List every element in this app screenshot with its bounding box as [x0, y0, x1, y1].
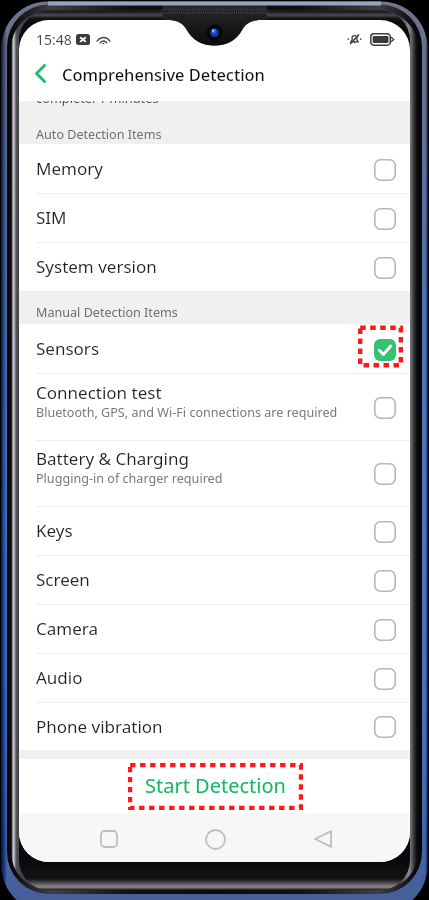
- staticText: Start Detection: [145, 772, 286, 799]
- staticText: Audio: [36, 666, 83, 689]
- button[interactable]: Toggle item: [374, 159, 396, 181]
- staticText: Keys: [36, 519, 73, 542]
- button[interactable]: Screen: [19, 555, 410, 604]
- staticText: Battery & Charging: [36, 447, 189, 470]
- staticText: Comprehensive Detection: [62, 63, 265, 85]
- button[interactable]: Memory: [19, 144, 410, 193]
- button[interactable]: Toggle item: [374, 716, 396, 738]
- button[interactable]: System version: [19, 242, 410, 291]
- button[interactable]: Back: [301, 817, 345, 861]
- button[interactable]: Connection test: [19, 373, 410, 440]
- button[interactable]: Phone vibration: [19, 702, 410, 750]
- staticText: Sensors: [36, 337, 100, 360]
- button[interactable]: Recent apps: [87, 817, 131, 861]
- button[interactable]: Audio: [19, 653, 410, 702]
- button[interactable]: Toggle item: [374, 619, 396, 641]
- staticText: Bluetooth, GPS, and Wi-Fi connections ar…: [36, 404, 338, 421]
- button[interactable]: Toggle item: [374, 463, 396, 485]
- button[interactable]: Camera: [19, 604, 410, 653]
- staticText: Camera: [36, 617, 98, 640]
- button[interactable]: Keys: [19, 506, 410, 555]
- staticText: Auto Detection Items: [36, 126, 162, 143]
- button[interactable]: Toggle item: [374, 397, 396, 419]
- staticText: 15:48: [36, 30, 72, 49]
- button[interactable]: Toggle item: [374, 208, 396, 230]
- button[interactable]: Toggle item: [374, 257, 396, 279]
- staticText: SIM: [36, 206, 67, 229]
- staticText: Plugging-in of charger required: [36, 470, 223, 487]
- staticText: Manual Detection Items: [36, 304, 178, 321]
- button[interactable]: Toggle item: [374, 668, 396, 690]
- button[interactable]: Sensors: [19, 324, 410, 373]
- staticText: System version: [36, 255, 157, 278]
- button[interactable]: Home: [193, 817, 237, 861]
- staticText: Phone vibration: [36, 715, 163, 738]
- button[interactable]: SIM: [19, 193, 410, 242]
- button[interactable]: Battery & Charging: [19, 440, 410, 506]
- staticText: Memory: [36, 157, 103, 180]
- staticText: complete: 1 minutes: [36, 89, 159, 106]
- button[interactable]: Toggle item: [374, 521, 396, 543]
- button[interactable]: Toggle item: [374, 339, 396, 361]
- button[interactable]: Back: [24, 52, 56, 95]
- button[interactable]: Toggle item: [374, 570, 396, 592]
- staticText: Screen: [36, 568, 90, 591]
- button[interactable]: Start Detection: [128, 763, 303, 810]
- staticText: Connection test: [36, 381, 162, 404]
